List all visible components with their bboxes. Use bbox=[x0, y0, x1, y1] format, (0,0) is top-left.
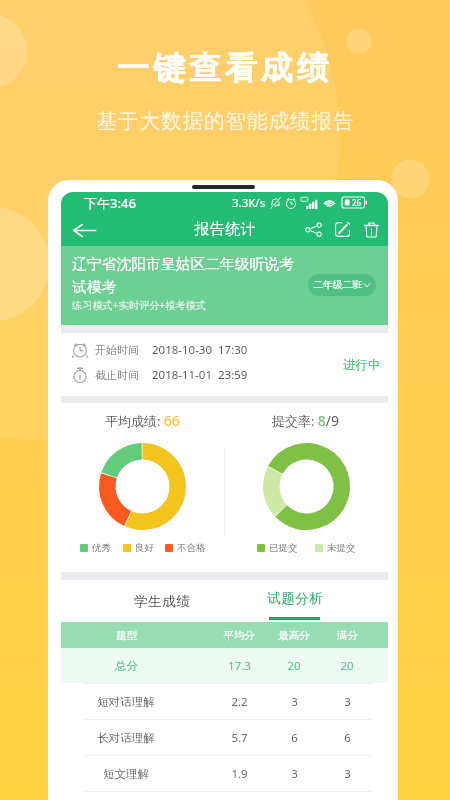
staticText: 学生成绩 bbox=[134, 593, 190, 610]
staticText: 试题分析 bbox=[267, 590, 323, 607]
staticText: 2018-11-01 23:59 bbox=[152, 367, 248, 383]
button[interactable]: Back bbox=[69, 215, 99, 245]
staticText: 20 bbox=[340, 658, 354, 674]
staticText: 最高分 bbox=[278, 629, 310, 642]
staticText: 平均成绩: 66 bbox=[105, 411, 180, 430]
staticText: 二年级二班 bbox=[313, 279, 362, 291]
staticText: 2.2 bbox=[231, 694, 248, 710]
staticText: 1.9 bbox=[231, 766, 248, 782]
staticText: 17.3 bbox=[228, 658, 251, 674]
button[interactable]: 总分 bbox=[61, 648, 388, 683]
staticText: 一键查看成绩 bbox=[117, 48, 333, 88]
staticText: 试模考 bbox=[72, 278, 117, 297]
staticText: 报告统计 bbox=[194, 220, 256, 239]
staticText: 短文理解 bbox=[103, 767, 149, 781]
staticText: 长对话理解 bbox=[97, 731, 155, 745]
staticText: 不合格 bbox=[177, 542, 206, 554]
staticText: 基于大数据的智能成绩报告 bbox=[96, 108, 354, 134]
button[interactable]: 试题分析 bbox=[228, 580, 361, 622]
staticText: 满分 bbox=[337, 629, 358, 642]
staticText: 已提交 bbox=[269, 542, 298, 554]
button[interactable]: Edit bbox=[328, 215, 357, 244]
staticText: 优秀 bbox=[92, 542, 111, 554]
button[interactable]: Delete bbox=[357, 215, 386, 244]
staticText: 3 bbox=[344, 766, 351, 782]
staticText: 总分 bbox=[115, 659, 138, 673]
staticText: 26 bbox=[352, 197, 362, 208]
button[interactable]: Share bbox=[299, 215, 328, 244]
staticText: 练习模式+实时评分+模考模式 bbox=[72, 298, 206, 312]
button[interactable]: 学生成绩 bbox=[96, 580, 228, 622]
staticText: 未提交 bbox=[327, 542, 356, 554]
button[interactable]: 短对话理解 bbox=[61, 684, 388, 719]
staticText: 2018-10-30 17:30 bbox=[152, 342, 248, 358]
staticText: 6 bbox=[291, 730, 298, 746]
button[interactable]: 二年级二班 bbox=[308, 274, 376, 296]
staticText: 3 bbox=[344, 694, 351, 710]
staticText: 短对话理解 bbox=[97, 695, 155, 709]
staticText: 5.7 bbox=[231, 730, 248, 746]
staticText: 6 bbox=[344, 730, 351, 746]
staticText: 20 bbox=[287, 658, 301, 674]
staticText: 提交率: 8/9 bbox=[272, 411, 340, 430]
staticText: 下午3:46 bbox=[84, 194, 136, 212]
staticText: 开始时间 bbox=[95, 343, 139, 357]
staticText: 3 bbox=[291, 766, 298, 782]
button[interactable]: 短文理解 bbox=[61, 756, 388, 791]
staticText: 题型 bbox=[116, 629, 137, 642]
staticText: 辽宁省沈阳市皇姑区二年级听说考 bbox=[72, 255, 294, 274]
staticText: 进行中 bbox=[343, 357, 381, 373]
staticText: 3 bbox=[291, 694, 298, 710]
staticText: 3.3K/s bbox=[232, 195, 266, 211]
staticText: 截止时间 bbox=[95, 368, 139, 382]
button[interactable]: 长对话理解 bbox=[61, 720, 388, 755]
staticText: 良好 bbox=[135, 542, 154, 554]
staticText: 平均分 bbox=[223, 629, 255, 642]
